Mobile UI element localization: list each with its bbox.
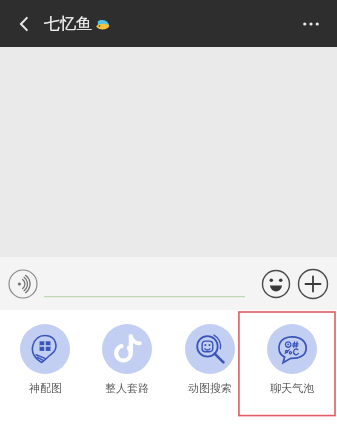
button[interactable]: Back <box>6 6 42 42</box>
button[interactable]: More options <box>291 4 331 44</box>
staticText: 聊天气泡 <box>270 381 314 395</box>
button[interactable]: Voice input <box>8 269 38 299</box>
button[interactable]: Emoji <box>261 269 291 299</box>
button[interactable]: 动图搜索 <box>172 322 248 397</box>
button[interactable]: More functions <box>297 268 329 300</box>
button[interactable] <box>44 269 245 299</box>
staticText: 动图搜索 <box>188 381 232 395</box>
staticText: 整人套路 <box>105 381 149 395</box>
button[interactable]: 聊天气泡 <box>254 322 330 397</box>
button[interactable]: 整人套路 <box>89 322 165 397</box>
staticText: 神配图 <box>29 381 62 395</box>
button[interactable]: 神配图 <box>7 322 83 397</box>
staticText: 七忆鱼 <box>44 14 92 34</box>
